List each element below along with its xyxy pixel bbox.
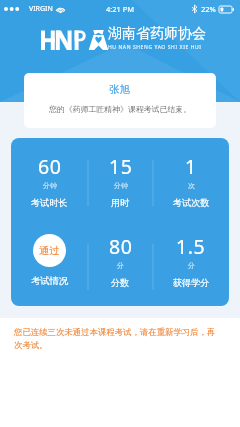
- staticText: 1: [185, 153, 197, 180]
- staticText: 60: [38, 153, 62, 180]
- staticText: 考试次数: [173, 197, 210, 208]
- staticText: 分数: [111, 277, 130, 288]
- staticText: 考试时长: [31, 197, 68, 208]
- button[interactable]: 通过: [33, 234, 66, 267]
- staticText: 获得学分: [173, 277, 210, 288]
- staticText: 分: [188, 261, 195, 270]
- staticText: 1.5: [176, 233, 206, 260]
- staticText: 22%: [201, 4, 216, 14]
- staticText: 您已连续三次未通过本课程考试，请在重新学习后，再次考试。: [14, 327, 219, 350]
- button[interactable]: 张旭: [24, 73, 216, 128]
- staticText: 分钟: [114, 181, 128, 190]
- staticText: 次: [188, 181, 195, 190]
- staticText: 分钟: [43, 181, 57, 190]
- staticText: 您的《药师工匠精神》课程考试已结束。: [49, 104, 192, 114]
- staticText: 4:21 PM: [106, 4, 135, 14]
- staticText: 通过: [39, 244, 60, 257]
- staticText: 分: [117, 261, 124, 270]
- staticText: VIRGIN: [29, 4, 53, 14]
- staticText: 15: [109, 153, 133, 180]
- staticText: 用时: [111, 197, 130, 208]
- staticText: 张旭: [109, 83, 131, 96]
- staticText: 湖南省药师协会: [108, 25, 206, 43]
- staticText: 80: [109, 233, 133, 260]
- staticText: 考试情况: [31, 275, 69, 287]
- staticText: HU NAN SHENG YAO SHI XIE HUI: [108, 44, 202, 51]
